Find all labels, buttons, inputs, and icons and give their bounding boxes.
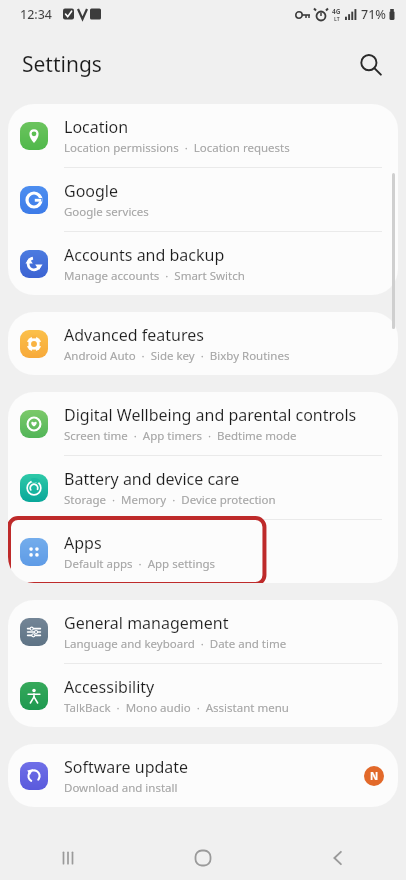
button[interactable]: Software update: [8, 744, 398, 807]
staticText: General management: [64, 612, 229, 634]
staticText: 4G: [332, 7, 341, 16]
staticText: Battery and device care: [64, 468, 240, 490]
button[interactable]: General management: [8, 600, 398, 663]
button[interactable]: Recents: [40, 836, 96, 880]
staticText: Advanced features: [64, 324, 204, 346]
staticText: Accessibility: [64, 676, 155, 698]
staticText: Google services: [64, 204, 149, 220]
staticText: Accounts and backup: [64, 244, 225, 266]
staticText: 12:34: [20, 6, 53, 23]
button[interactable]: Google: [8, 168, 398, 231]
staticText: 71%: [361, 6, 386, 23]
staticText: Google: [64, 180, 119, 202]
staticText: TalkBack · Mono audio · Assistant menu: [64, 700, 289, 716]
button[interactable]: Location: [8, 104, 398, 167]
button[interactable]: Search: [348, 42, 392, 86]
staticText: Settings: [22, 50, 102, 79]
staticText: Location permissions · Location requests: [64, 140, 290, 156]
staticText: Software update: [64, 756, 189, 778]
staticText: Android Auto · Side key · Bixby Routines: [64, 348, 290, 364]
button[interactable]: Home: [175, 836, 231, 880]
staticText: Digital Wellbeing and parental controls: [64, 404, 357, 426]
button[interactable]: Accounts and backup: [8, 232, 398, 295]
button[interactable]: Battery and device care: [8, 456, 398, 519]
button[interactable]: Advanced features: [8, 312, 398, 375]
button[interactable]: Digital Wellbeing and parental controls: [8, 392, 398, 455]
staticText: Download and install: [64, 780, 178, 796]
button[interactable]: Apps: [8, 520, 398, 583]
staticText: Apps: [64, 532, 102, 554]
staticText: Manage accounts · Smart Switch: [64, 268, 245, 284]
staticText: Storage · Memory · Device protection: [64, 492, 276, 508]
staticText: Language and keyboard · Date and time: [64, 636, 287, 652]
staticText: Location: [64, 116, 129, 138]
button[interactable]: Back: [310, 836, 366, 880]
staticText: Screen time · App timers · Bedtime mode: [64, 428, 297, 444]
button[interactable]: Accessibility: [8, 664, 398, 727]
staticText: N: [370, 769, 379, 783]
staticText: Default apps · App settings: [64, 556, 216, 572]
staticText: LT: [334, 16, 340, 23]
